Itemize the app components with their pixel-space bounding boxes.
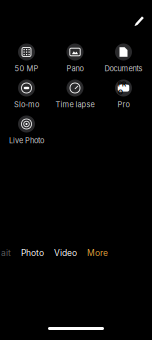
button[interactable]: Pano [51,44,99,80]
staticText: Pro [117,100,129,109]
button[interactable]: Video [54,249,77,257]
staticText: PRO [118,80,129,96]
staticText: Slo-mo [14,100,39,109]
button[interactable]: 50 MP [2,44,51,80]
button[interactable]: Documents [99,44,148,80]
staticText: Photo [21,248,44,258]
staticText: Video [54,248,77,258]
button[interactable]: ait [1,249,11,257]
staticText: Pano [66,64,83,73]
staticText: Documents [104,64,142,73]
staticText: Time lapse [55,100,94,109]
button[interactable]: Photo [21,249,44,257]
button[interactable]: More [87,249,108,257]
button[interactable]: Live Photo [2,116,51,152]
staticText: ait [1,248,11,258]
staticText: 50 MP [14,64,38,73]
staticText: More [87,248,108,258]
button[interactable]: Time lapse [51,80,99,116]
staticText: Live Photo [9,136,44,145]
button[interactable]: Edit modes [128,9,151,32]
button[interactable]: Slo-mo [2,80,51,116]
button[interactable]: PRO [99,80,148,116]
